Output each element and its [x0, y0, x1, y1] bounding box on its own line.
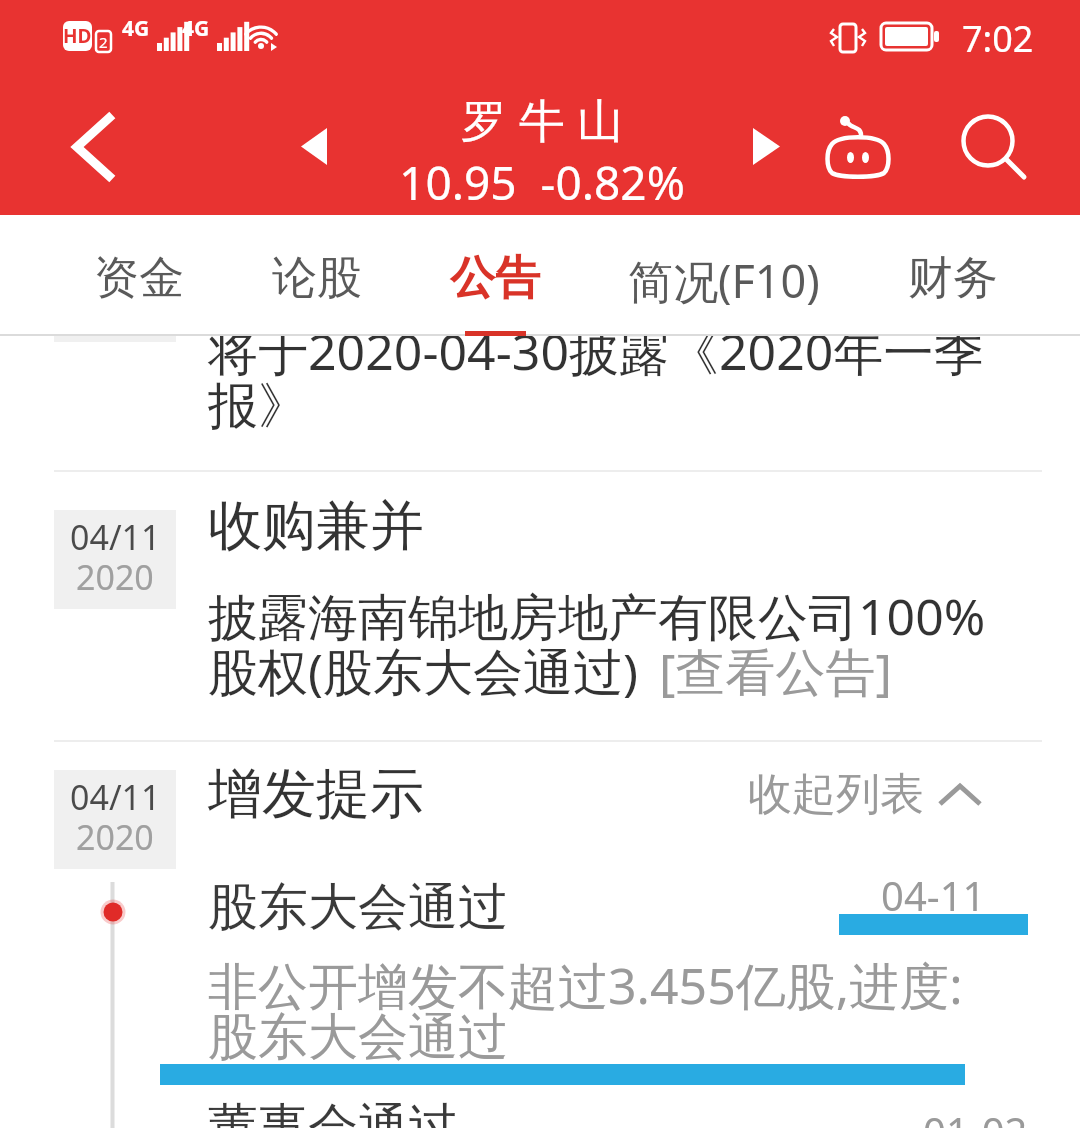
button[interactable]: 资金	[94, 215, 184, 336]
staticText: 罗 牛 山	[461, 88, 623, 151]
staticText: 04/11	[70, 774, 161, 820]
staticText: 董事会通过	[208, 1096, 458, 1128]
staticText: [查看公告]	[659, 637, 892, 705]
button[interactable]: Search	[932, 78, 1056, 215]
staticText: 2	[99, 32, 108, 52]
staticText: 将于2020-04-30披露《2020年一季	[208, 336, 984, 385]
staticText: 资金	[94, 250, 184, 307]
button[interactable]: Previous stock	[256, 78, 371, 215]
staticText: 收起列表	[748, 767, 924, 822]
staticText: 论股	[272, 250, 362, 307]
staticText: 04/11	[70, 514, 161, 560]
button[interactable]: 简况(F10)	[628, 215, 820, 336]
staticText: 4G	[122, 14, 150, 43]
staticText: 2020	[76, 554, 154, 600]
staticText: 非公开增发不超过3.455亿股,进度:	[208, 951, 963, 1019]
staticText: 10.95 -0.82%	[399, 151, 685, 214]
button[interactable]: 公告	[450, 215, 540, 336]
staticText: HD	[63, 23, 92, 49]
staticText: 财务	[908, 250, 998, 307]
button[interactable]: Back	[18, 78, 168, 215]
staticText: 04-11	[881, 868, 986, 922]
button[interactable]: Assistant	[808, 78, 908, 215]
staticText: 报》	[208, 375, 308, 438]
staticText: 公告	[450, 250, 540, 307]
staticText: 简况(F10)	[628, 250, 820, 311]
staticText: 收购兼并	[208, 492, 424, 560]
staticText: 4G	[182, 14, 210, 43]
button[interactable]: 财务	[908, 215, 998, 336]
staticText: 披露海南锦地房地产有限公司100%	[208, 582, 986, 650]
staticText: 股东大会通过	[208, 1006, 508, 1069]
button[interactable]: Next stock	[709, 78, 824, 215]
button[interactable]: 论股	[272, 215, 362, 336]
button[interactable]: 将于2020-04-30披露《2020年一季	[0, 336, 1080, 470]
staticText: 01-02	[923, 1104, 1028, 1128]
staticText: 股东大会通过	[208, 876, 508, 939]
staticText: 股权(股东大会通过)	[208, 637, 638, 705]
button[interactable]: 04/11	[0, 472, 1080, 740]
button[interactable]: 收起列表	[748, 767, 980, 822]
staticText: 增发提示	[208, 760, 424, 828]
staticText: 7:02	[962, 14, 1034, 63]
staticText: 2020	[76, 814, 154, 860]
